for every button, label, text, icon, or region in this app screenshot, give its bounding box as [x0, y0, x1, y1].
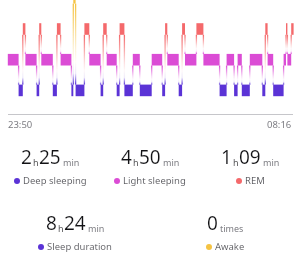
staticText: 8: [46, 210, 57, 236]
staticText: Light sleeping: [123, 174, 186, 187]
staticText: 1: [221, 144, 232, 170]
staticText: 4: [121, 144, 132, 170]
staticText: min: [263, 156, 280, 168]
staticText: h: [33, 156, 39, 168]
staticText: Deep sleeping: [23, 174, 87, 187]
button[interactable]: 8: [0, 210, 150, 253]
staticText: 08:16: [267, 118, 292, 131]
staticText: h: [233, 156, 239, 168]
staticText: 50: [139, 144, 161, 170]
staticText: h: [58, 222, 64, 234]
staticText: Awake: [215, 240, 245, 253]
button[interactable]: 2: [0, 144, 100, 187]
staticText: times: [220, 222, 244, 234]
button[interactable]: 1: [200, 144, 300, 187]
button[interactable]: 0: [150, 210, 300, 253]
staticText: 23:50: [8, 118, 33, 131]
staticText: 25: [39, 144, 61, 170]
staticText: min: [88, 222, 105, 234]
staticText: REM: [245, 174, 265, 187]
button[interactable]: 4: [100, 144, 200, 187]
staticText: Sleep duration: [47, 240, 112, 253]
staticText: min: [163, 156, 180, 168]
staticText: min: [63, 156, 80, 168]
staticText: 24: [64, 210, 86, 236]
staticText: h: [133, 156, 139, 168]
staticText: 0: [207, 210, 218, 236]
staticText: 2: [21, 144, 32, 170]
staticText: 09: [239, 144, 261, 170]
